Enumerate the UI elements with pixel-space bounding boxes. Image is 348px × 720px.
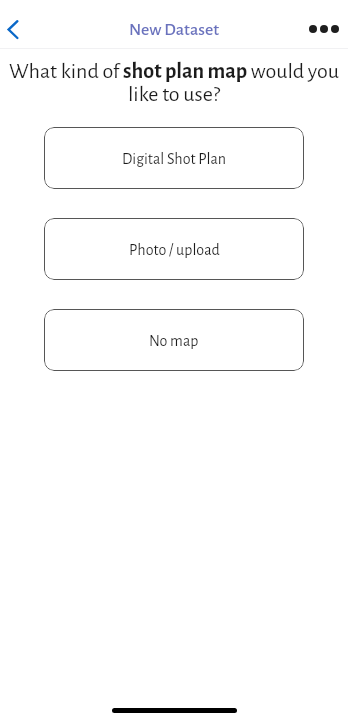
button[interactable]: More options bbox=[304, 11, 344, 47]
button[interactable]: Back bbox=[0, 11, 36, 47]
staticText: What kind of shot plan map would you lik… bbox=[5, 60, 343, 105]
staticText: No map bbox=[149, 333, 199, 349]
button[interactable]: No map bbox=[44, 309, 304, 371]
staticText: New Dataset bbox=[129, 21, 220, 39]
staticText: Photo / upload bbox=[129, 242, 220, 258]
staticText: Digital Shot Plan bbox=[122, 151, 227, 167]
button[interactable]: Digital Shot Plan bbox=[44, 127, 304, 189]
button[interactable]: Photo / upload bbox=[44, 218, 304, 280]
